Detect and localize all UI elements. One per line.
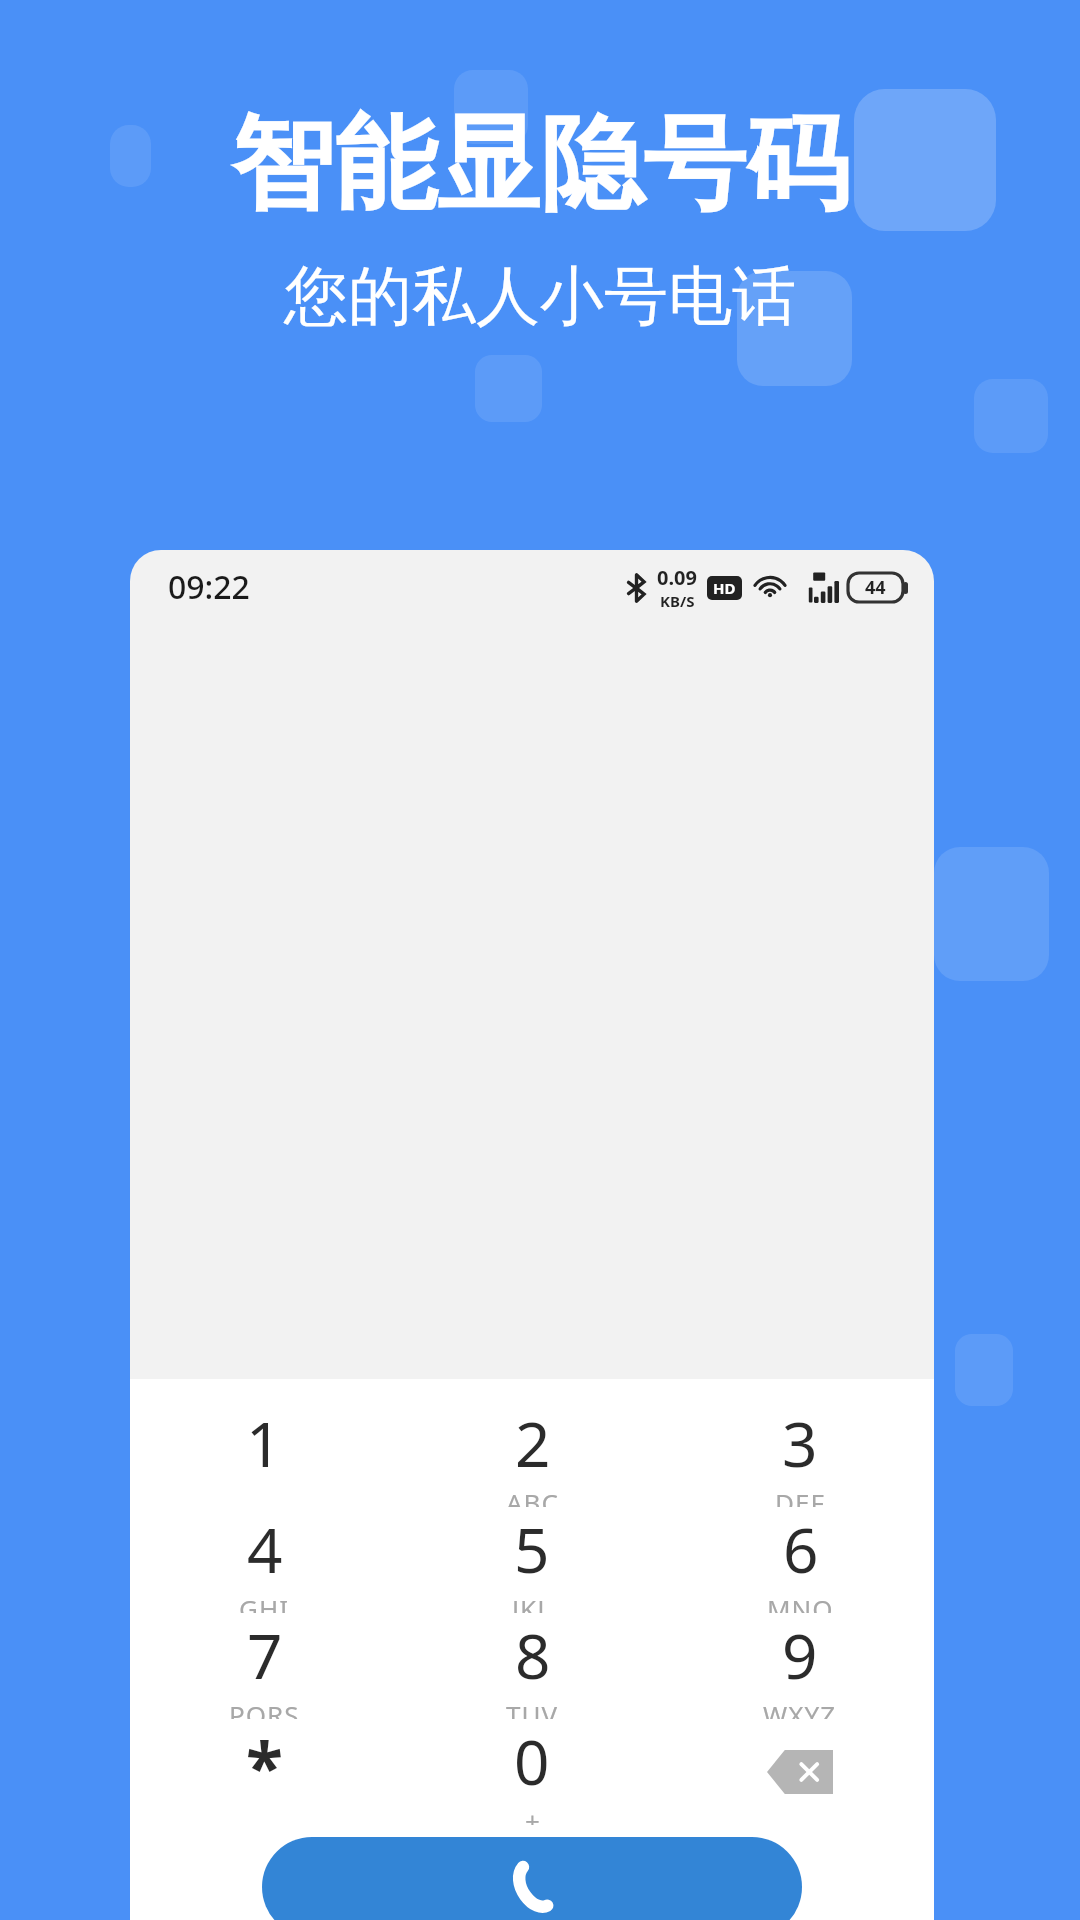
button[interactable]: 7 <box>130 1613 398 1719</box>
button[interactable]: 1 <box>130 1401 398 1507</box>
button[interactable]: 5 <box>398 1507 666 1613</box>
staticText: 3 <box>782 1401 818 1485</box>
staticText: 智能显隐号码 <box>231 100 849 230</box>
staticText: 9 <box>782 1613 818 1697</box>
button[interactable]: 4 <box>130 1507 398 1613</box>
button[interactable]: 6 <box>666 1507 934 1613</box>
staticText: 0 <box>514 1719 550 1803</box>
staticText: KB/S <box>660 591 695 611</box>
staticText: JKL <box>512 1591 552 1613</box>
staticText: 8 <box>515 1613 551 1697</box>
button[interactable]: Backspace <box>666 1719 934 1825</box>
staticText: * <box>246 1719 283 1812</box>
button[interactable]: * <box>130 1719 398 1825</box>
staticText: WXYZ <box>763 1697 837 1719</box>
staticText: MNO <box>767 1591 834 1613</box>
staticText: 0.09 <box>657 564 697 591</box>
button[interactable]: 8 <box>398 1613 666 1719</box>
staticText: 1 <box>246 1401 282 1485</box>
staticText: 44 <box>865 575 886 600</box>
button[interactable]: 0 <box>398 1719 666 1825</box>
staticText: 您的私人小号电话 <box>284 256 796 337</box>
staticText: TUV <box>506 1697 559 1719</box>
staticText: 09:22 <box>168 565 250 609</box>
button[interactable]: 3 <box>666 1401 934 1507</box>
staticText: DEF <box>775 1485 825 1507</box>
staticText: HD <box>713 578 736 598</box>
staticText: 2 <box>515 1401 551 1485</box>
button[interactable]: Call <box>262 1837 802 1920</box>
staticText: + <box>525 1803 540 1825</box>
staticText: 5 <box>514 1507 550 1591</box>
staticText: ABC <box>506 1485 559 1507</box>
staticText: 7 <box>247 1613 283 1697</box>
button[interactable]: 2 <box>398 1401 666 1507</box>
staticText: 4 <box>247 1507 283 1591</box>
staticText: GHI <box>239 1591 290 1613</box>
button[interactable]: 9 <box>666 1613 934 1719</box>
staticText: PQRS <box>229 1697 300 1719</box>
staticText: 6 <box>783 1507 819 1591</box>
